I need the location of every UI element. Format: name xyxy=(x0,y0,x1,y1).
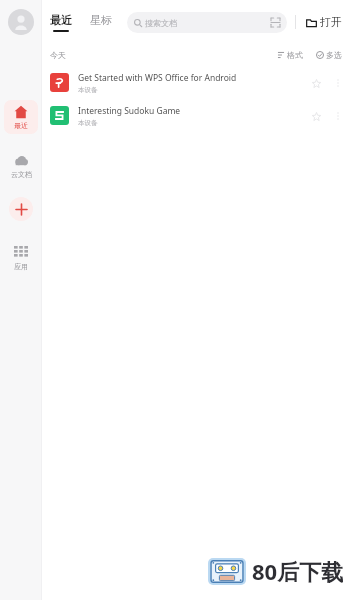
button[interactable]: 最近 xyxy=(4,100,38,134)
staticText: 本设备 xyxy=(78,86,98,94)
staticText: Get Started with WPS Office for Android xyxy=(78,72,237,84)
button[interactable]: Star xyxy=(308,108,324,124)
button[interactable]: New xyxy=(9,197,33,221)
staticText: 本设备 xyxy=(78,119,98,127)
staticText: 格式 xyxy=(287,50,303,60)
staticText: 最近 xyxy=(50,13,72,27)
button[interactable]: Profile xyxy=(8,9,34,35)
staticText: 多选 xyxy=(326,50,342,60)
button[interactable]: 最近 xyxy=(45,13,77,32)
button[interactable]: 搜索文档 xyxy=(127,12,287,33)
staticText: 今天 xyxy=(50,50,66,60)
staticText: Interesting Sudoku Game xyxy=(78,105,181,117)
staticText: 星标 xyxy=(90,13,112,27)
button[interactable]: 应用 xyxy=(4,241,38,275)
button[interactable]: 打开 xyxy=(304,11,344,33)
staticText: 应用 xyxy=(14,262,28,271)
button[interactable]: 多选 xyxy=(314,48,344,62)
other: Scan xyxy=(271,18,280,27)
staticText: 搜索文档 xyxy=(145,18,177,28)
button[interactable]: 格式 xyxy=(275,48,305,62)
button[interactable]: Star xyxy=(308,75,324,91)
button[interactable]: 星标 xyxy=(85,15,117,29)
staticText: 80后下载 xyxy=(252,556,344,586)
button[interactable]: Get Started with WPS Office for Android xyxy=(42,66,352,99)
staticText: 云文档 xyxy=(11,170,32,179)
button[interactable]: Interesting Sudoku Game xyxy=(42,99,352,132)
staticText: 最近 xyxy=(14,121,28,130)
button[interactable]: 云文档 xyxy=(4,149,38,183)
staticText: 打开 xyxy=(320,15,342,29)
